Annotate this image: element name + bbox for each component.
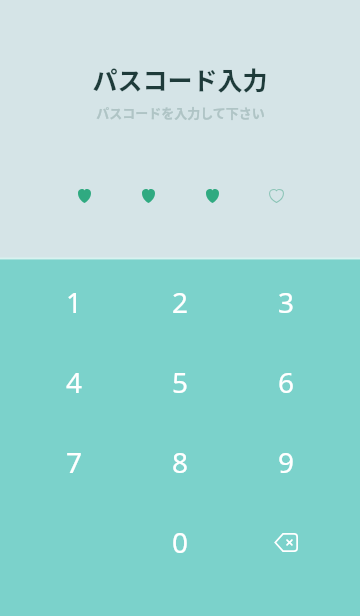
staticText: 8	[172, 443, 189, 481]
staticText: 4	[66, 363, 83, 401]
button[interactable]: 1	[21, 262, 127, 342]
button[interactable]: 3	[233, 262, 339, 342]
staticText: パスコード入力	[92, 61, 268, 97]
staticText: 9	[278, 443, 295, 481]
button[interactable]: 0	[127, 502, 233, 582]
staticText: 0	[172, 523, 189, 561]
button[interactable]: 5	[127, 342, 233, 422]
staticText: 6	[278, 363, 295, 401]
staticText: 1	[66, 283, 83, 321]
button[interactable]: 8	[127, 422, 233, 502]
staticText: パスコードを入力して下さい	[96, 103, 265, 122]
button[interactable]: Delete	[233, 502, 339, 582]
button[interactable]: 4	[21, 342, 127, 422]
button[interactable]: 6	[233, 342, 339, 422]
button[interactable]: 7	[21, 422, 127, 502]
staticText: 5	[172, 363, 189, 401]
button[interactable]: 9	[233, 422, 339, 502]
button[interactable]: 2	[127, 262, 233, 342]
staticText: 7	[66, 443, 83, 481]
staticText: 3	[278, 283, 295, 321]
staticText: 2	[172, 283, 189, 321]
